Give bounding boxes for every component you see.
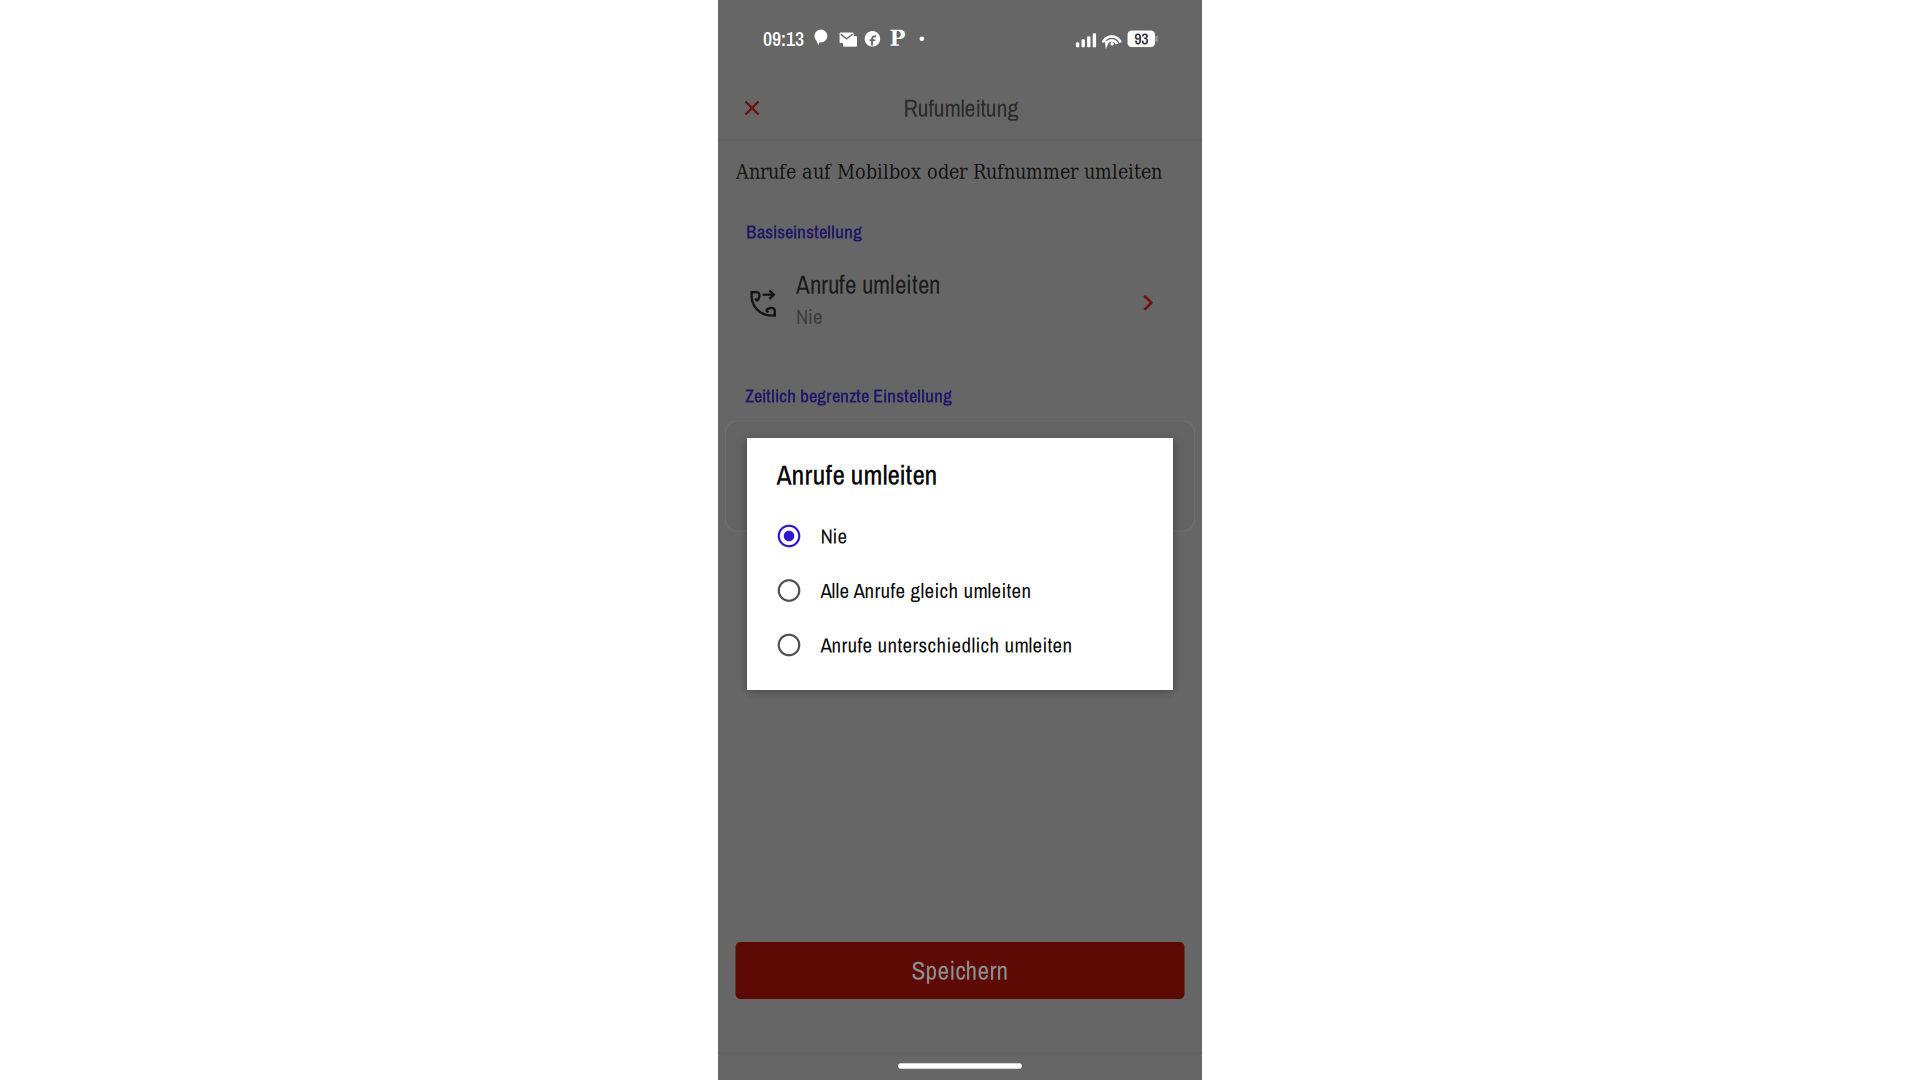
staticText: Nie (820, 522, 847, 550)
staticText: Anrufe unterschiedlich umleiten (820, 631, 1072, 659)
staticText: Nie (796, 303, 822, 330)
button[interactable]: Schließen (728, 84, 776, 132)
staticText: 93 (1134, 28, 1148, 50)
staticText: Anrufe umleiten (776, 457, 937, 493)
staticText: 09:13 (763, 25, 804, 52)
button[interactable]: Nie (747, 509, 1173, 563)
button[interactable]: Anrufe unterschiedlich umleiten (747, 618, 1173, 672)
staticText: Speichern (911, 953, 1008, 987)
button[interactable]: Speichern (735, 942, 1184, 999)
staticText: Alle Anrufe gleich umleiten (820, 576, 1031, 605)
staticText: P (889, 26, 905, 51)
staticText: Rufumleitung (903, 92, 1018, 124)
staticText: Basiseinstellung (746, 220, 862, 244)
staticText: Anrufe auf Mobilbox oder Rufnummer umlei… (736, 161, 1162, 183)
staticText: Anrufe umleiten (796, 268, 940, 302)
button[interactable]: Anrufe umleiten (718, 265, 1202, 341)
button[interactable]: Alle Anrufe gleich umleiten (747, 563, 1173, 617)
staticText: Zeitlich begrenzte Einstellung (745, 384, 952, 408)
